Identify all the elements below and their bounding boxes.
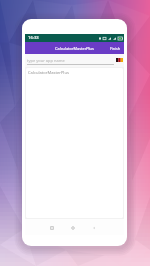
staticText: CalculatorMasterPlus	[28, 70, 69, 76]
button[interactable]: Back	[88, 222, 99, 233]
button[interactable]: CalculatorMasterPlus	[26, 68, 123, 78]
staticText: 16:33	[28, 35, 39, 41]
staticText: CalculatorMasterPlus	[55, 46, 94, 51]
button[interactable]: type your app name	[25, 54, 124, 65]
button[interactable]: Recents	[46, 222, 57, 233]
button[interactable]: Finish	[107, 44, 124, 53]
staticText: Finish	[110, 46, 121, 51]
staticText: type your app name	[27, 58, 65, 63]
button[interactable]: Language	[116, 58, 123, 62]
button[interactable]: Home	[67, 222, 78, 233]
